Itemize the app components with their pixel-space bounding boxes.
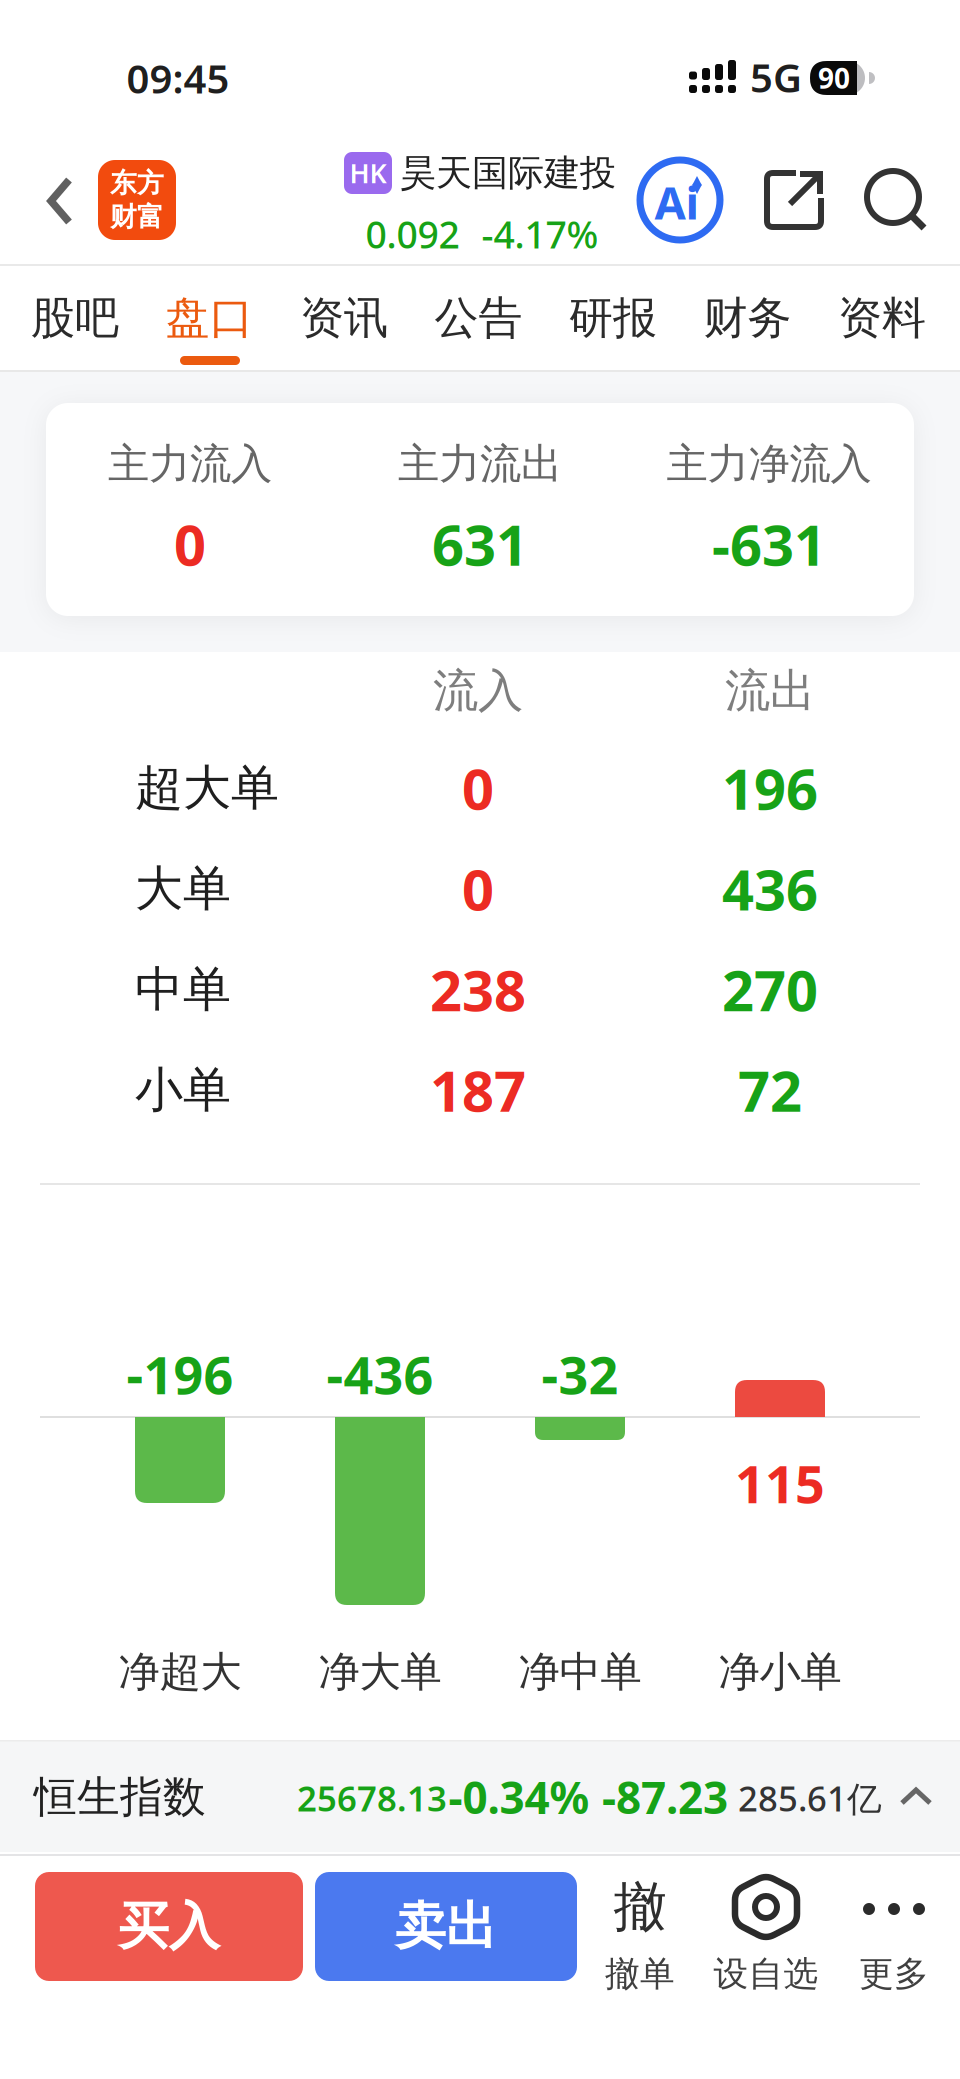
staticText: 卖出 [395,1895,497,1958]
button[interactable] [47,176,75,226]
button[interactable]: 撤 [580,1867,700,1997]
staticText: -196 [126,1339,233,1409]
button[interactable]: 股吧 [9,278,141,358]
staticText: 187 [430,1053,526,1127]
staticText: 东方 [110,167,164,199]
staticText: 196 [722,751,818,825]
staticText: 更多 [859,1953,929,1995]
button[interactable]: 公告 [412,278,544,358]
staticText: -631 [712,507,826,581]
button[interactable]: Ai [635,155,725,245]
staticText: 0 [462,851,494,926]
staticText: 大单 [135,859,231,918]
button[interactable]: 资料 [816,278,948,358]
staticText: -32 [541,1339,618,1409]
staticText: 净大单 [318,1647,441,1697]
staticText: 撤 [613,1874,666,1940]
button[interactable]: 研报 [547,278,679,358]
staticText: -0.34% [448,1768,589,1826]
staticText: 净小单 [718,1647,841,1697]
button[interactable] [764,170,824,230]
staticText: 资料 [838,291,926,345]
staticText: 股吧 [31,291,119,345]
staticText: 436 [722,851,818,926]
staticText: 631 [432,507,528,581]
staticText: 撤单 [605,1953,675,1995]
staticText: 资讯 [300,291,388,345]
button[interactable]: 恒生指数 [0,1740,960,1852]
staticText: 238 [430,952,526,1027]
staticText: 流入 [433,663,523,719]
staticText: 中单 [135,960,231,1019]
staticText: 115 [735,1448,825,1518]
staticText: 小单 [135,1061,231,1120]
staticText: 90 [818,59,850,97]
staticText: 25678.13 [297,1775,447,1821]
staticText: 09:45 [126,51,229,104]
staticText: 买入 [118,1895,220,1958]
button[interactable]: 更多 [834,1867,954,1997]
staticText: 72 [738,1053,802,1127]
staticText: 0.092 [365,209,459,259]
staticText: 设自选 [713,1953,818,1995]
staticText: 公告 [434,291,522,345]
staticText: 主力流出 [398,439,562,489]
button[interactable]: 盘口 [143,278,275,358]
staticText: 主力流入 [108,439,272,489]
button[interactable]: 设自选 [696,1867,836,1997]
staticText: 昊天国际建投 [400,151,616,195]
staticText: 财富 [110,200,164,233]
staticText: 5G [750,50,802,103]
staticText: 流出 [725,663,815,719]
staticText: 净超大 [118,1647,241,1697]
staticText: 财务 [703,291,791,345]
button[interactable]: 卖出 [315,1872,577,1981]
staticText: 超大单 [135,758,279,817]
staticText: 285.61亿 [738,1775,882,1821]
staticText: 主力净流入 [666,439,871,489]
staticText: 盘口 [165,291,253,345]
button[interactable]: 资讯 [278,278,410,358]
staticText: HK [349,155,386,191]
staticText: 净中单 [518,1647,641,1697]
staticText: -4.17% [481,209,598,259]
staticText: 0 [174,507,206,581]
staticText: -87.23 [602,1768,728,1826]
button[interactable]: 买入 [35,1872,303,1981]
staticText: 研报 [569,291,657,345]
staticText: 恒生指数 [34,1771,206,1823]
staticText: -436 [326,1339,433,1409]
staticText: 270 [722,952,818,1027]
staticText: Ai [654,172,699,232]
button[interactable]: 东方 [98,160,176,240]
staticText: 0 [462,751,494,825]
button[interactable] [864,168,928,232]
button[interactable]: 财务 [681,278,813,358]
